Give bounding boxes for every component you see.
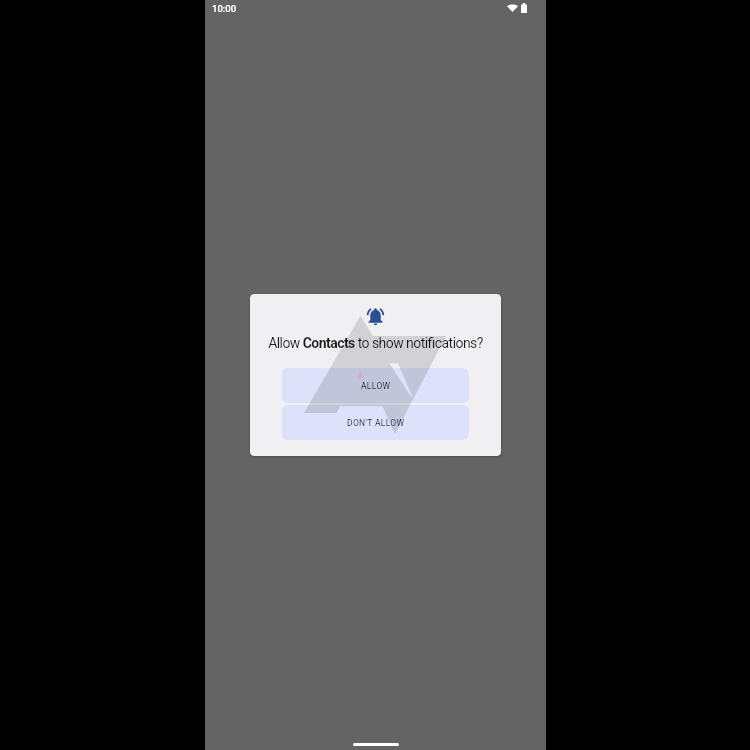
staticText: DON'T ALLOW [347, 418, 405, 428]
button[interactable]: DON'T ALLOW [282, 405, 469, 440]
staticText: Allow Contacts to show notifications? [268, 335, 483, 351]
button[interactable]: ALLOW [282, 368, 469, 403]
staticText: ALLOW [361, 381, 391, 391]
other: Wi-Fi [507, 4, 518, 12]
other: Battery [521, 3, 527, 13]
staticText: 10:00 [212, 3, 237, 14]
